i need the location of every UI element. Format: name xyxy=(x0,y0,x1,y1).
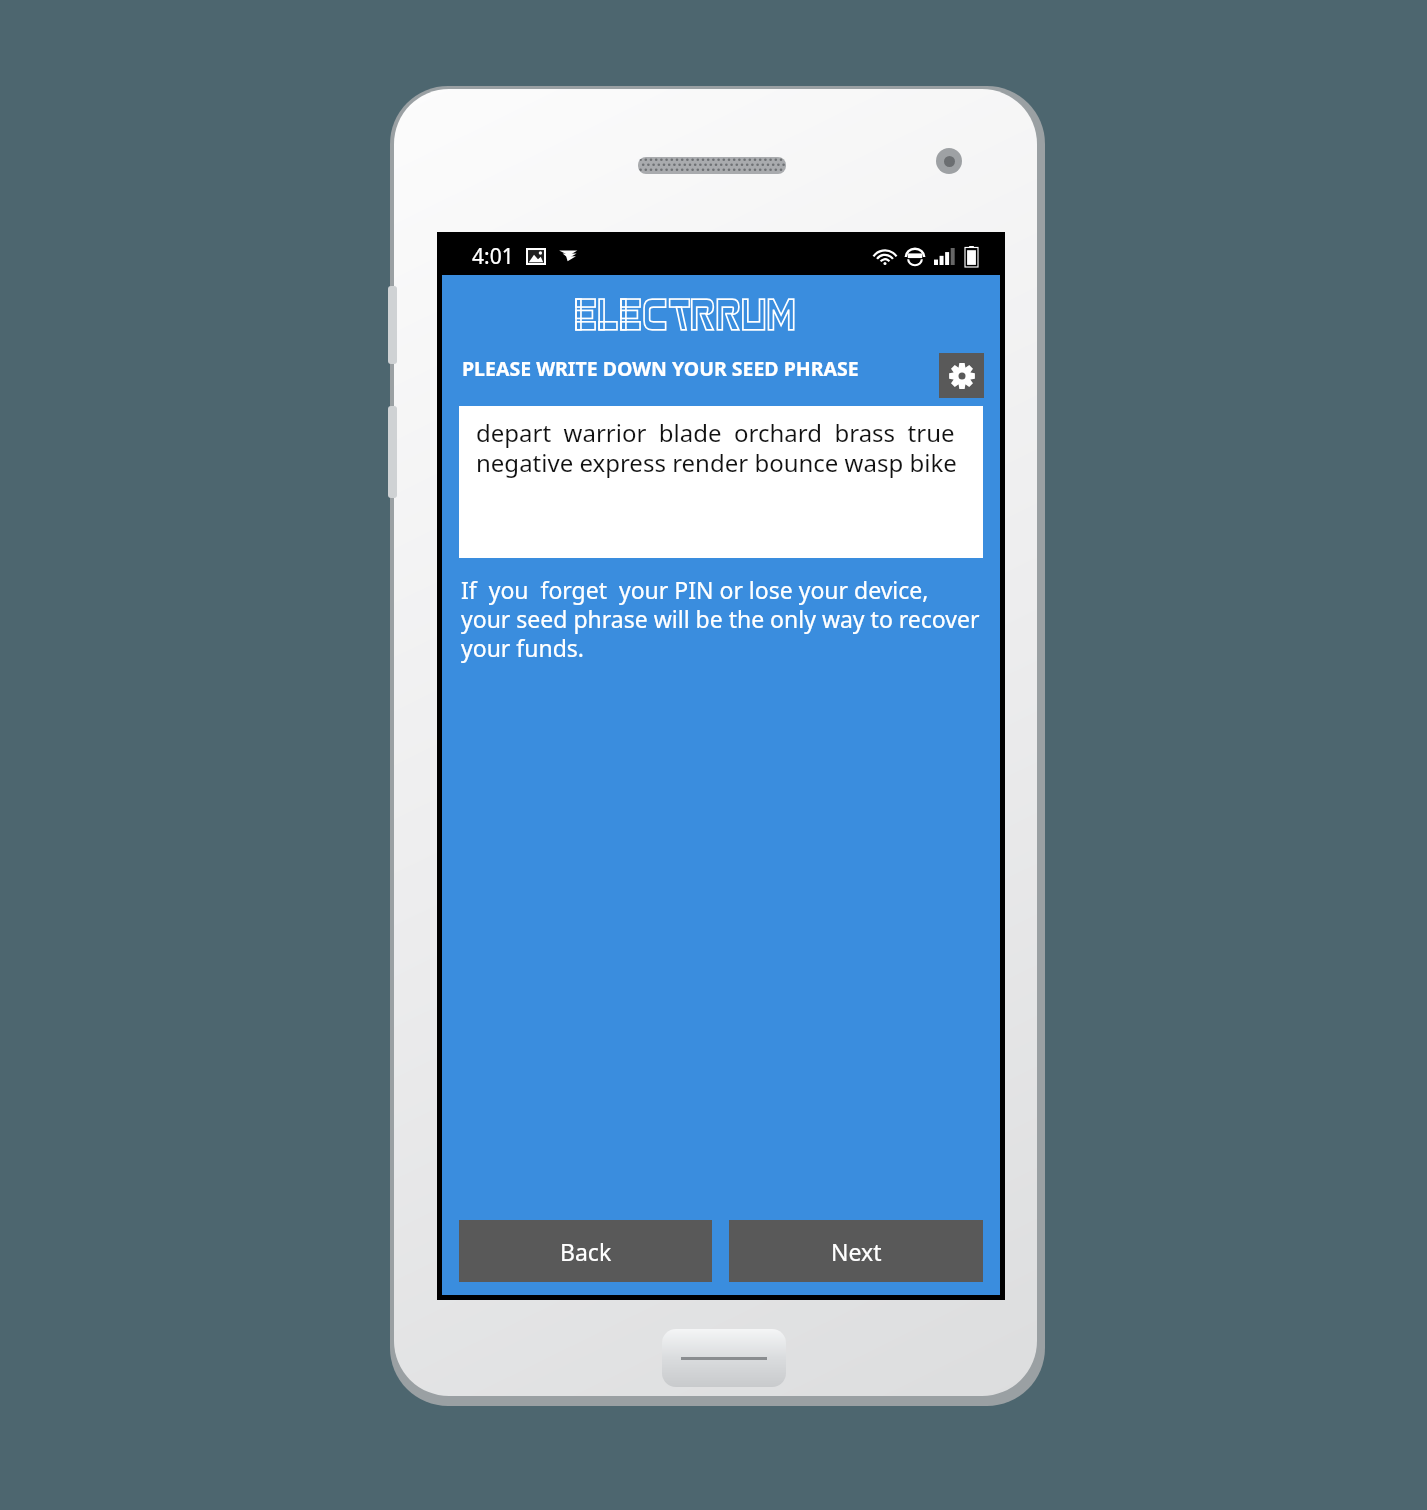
button[interactable]: Back xyxy=(459,1220,712,1282)
staticText: Back xyxy=(560,1236,612,1267)
button[interactable]: Settings xyxy=(939,353,984,398)
button[interactable]: Next xyxy=(729,1220,983,1282)
staticText: 4:01 xyxy=(472,242,514,271)
staticText: PLEASE WRITE DOWN YOUR SEED PHRASE xyxy=(462,355,931,382)
staticText: depart warrior blade orchard brass true … xyxy=(476,416,971,479)
button[interactable]: depart warrior blade orchard brass true … xyxy=(459,406,983,558)
staticText: If you forget your PIN or lose your devi… xyxy=(461,574,981,664)
staticText: Next xyxy=(831,1236,882,1267)
